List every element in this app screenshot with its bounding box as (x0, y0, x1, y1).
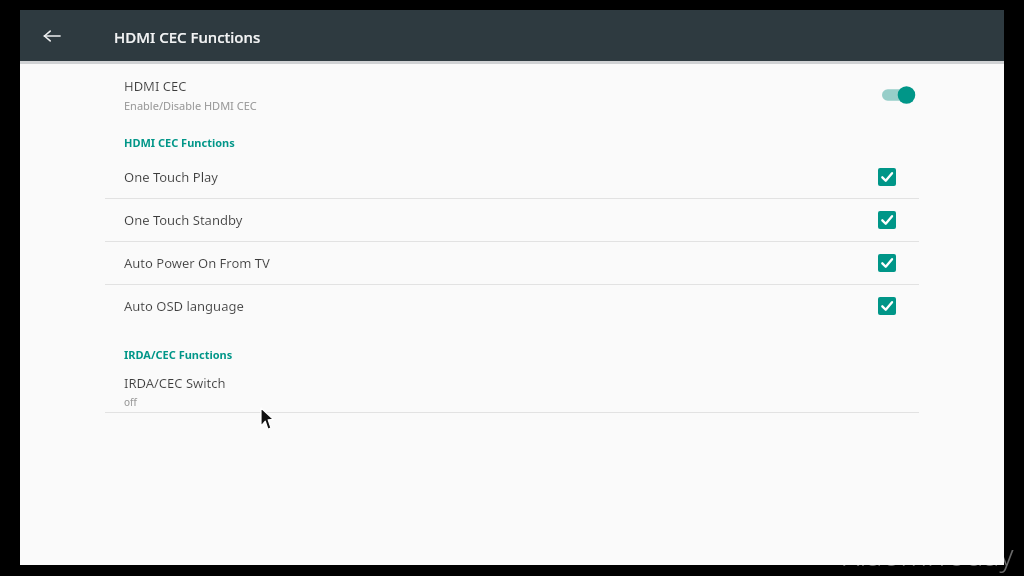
staticText: HDMI CEC (124, 77, 187, 95)
button[interactable]: One Touch Play (20, 156, 1004, 198)
staticText: HDMI CEC Functions (114, 27, 261, 47)
button[interactable]: IRDA/CEC Switch (20, 368, 1004, 412)
staticText: Auto Power On From TV (124, 254, 270, 272)
button[interactable]: Back (34, 18, 69, 53)
staticText: HDMI CEC Functions (124, 135, 235, 150)
staticText: One Touch Standby (124, 211, 243, 229)
staticText: XiaomiToday (843, 534, 1014, 575)
staticText: Enable/Disable HDMI CEC (124, 98, 257, 113)
staticText: IRDA/CEC Switch (124, 374, 226, 392)
button[interactable]: HDMI CEC toggle (882, 84, 916, 106)
staticText: One Touch Play (124, 168, 218, 186)
button[interactable]: Auto OSD language (20, 285, 1004, 327)
staticText: off (124, 395, 137, 409)
button[interactable]: One Touch Standby (20, 199, 1004, 241)
staticText: IRDA/CEC Functions (124, 347, 233, 362)
button[interactable]: Auto Power On From TV (20, 242, 1004, 284)
staticText: Auto OSD language (124, 297, 244, 315)
button[interactable]: HDMI CEC (20, 71, 1004, 116)
